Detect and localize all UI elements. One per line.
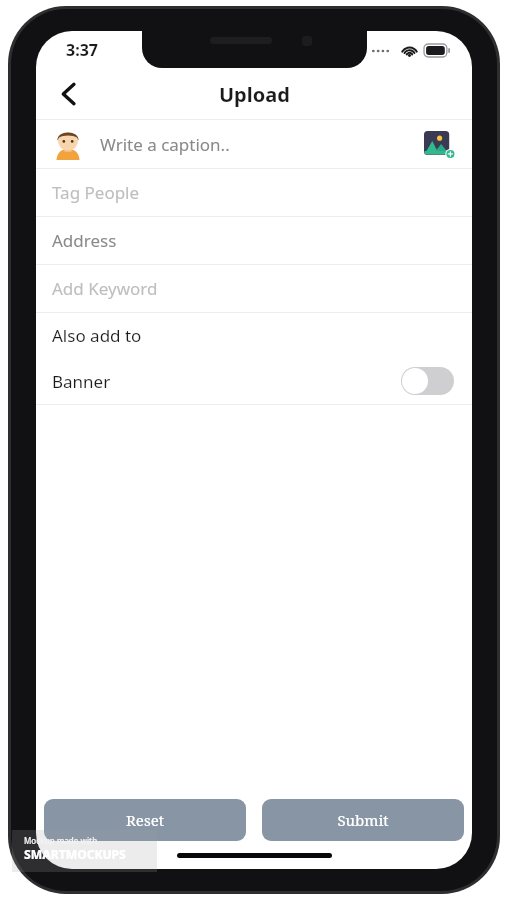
staticText: Address bbox=[52, 229, 117, 252]
button[interactable]: Add photo bbox=[422, 127, 456, 161]
staticText: 3:37 bbox=[66, 39, 98, 61]
staticText: SMARTMOCKUPS bbox=[24, 846, 126, 862]
button[interactable]: Banner bbox=[36, 358, 472, 404]
staticText: Add Keyword bbox=[52, 277, 158, 300]
button[interactable]: Add Keyword bbox=[36, 265, 472, 312]
staticText: Also add to bbox=[52, 324, 142, 347]
staticText: Upload bbox=[219, 81, 290, 108]
button[interactable]: Reset bbox=[44, 799, 246, 841]
button[interactable]: Tag People bbox=[36, 169, 472, 216]
staticText: Tag People bbox=[52, 181, 140, 204]
button[interactable]: Write a caption.. bbox=[36, 120, 472, 168]
staticText: Banner bbox=[52, 370, 401, 393]
button[interactable]: Submit bbox=[262, 799, 464, 841]
button[interactable]: Back bbox=[46, 72, 90, 116]
staticText: Reset bbox=[126, 810, 164, 830]
button[interactable]: Also add to bbox=[36, 313, 472, 358]
staticText: Write a caption.. bbox=[100, 133, 422, 156]
staticText: Submit bbox=[337, 810, 389, 830]
button[interactable]: Address bbox=[36, 217, 472, 264]
button[interactable]: Banner toggle bbox=[401, 367, 454, 395]
staticText: Mockup made with bbox=[24, 835, 98, 846]
